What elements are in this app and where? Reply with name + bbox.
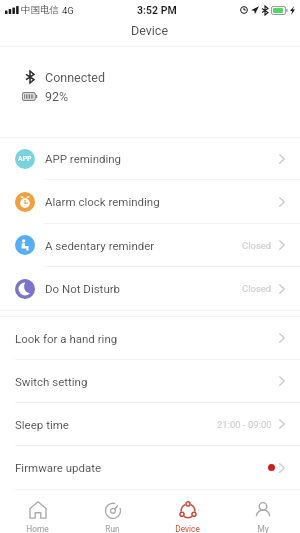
staticText: 4G bbox=[62, 5, 74, 16]
button[interactable]: Device bbox=[150, 490, 225, 533]
staticText: Closed bbox=[242, 240, 272, 251]
staticText: Device bbox=[131, 23, 169, 38]
staticText: Device bbox=[175, 524, 200, 533]
staticText: A sedentary reminder bbox=[45, 239, 155, 252]
staticText: APP bbox=[18, 155, 32, 163]
staticText: Alarm clock reminding bbox=[45, 195, 160, 208]
button[interactable]: A sedentary reminder bbox=[0, 224, 300, 266]
staticText: Run bbox=[105, 524, 120, 533]
staticText: Home bbox=[26, 524, 49, 533]
button[interactable]: Sleep time bbox=[0, 403, 300, 445]
staticText: Switch setting bbox=[15, 375, 88, 388]
staticText: Look for a hand ring bbox=[15, 332, 118, 345]
staticText: 中国电信 bbox=[21, 4, 59, 16]
button[interactable]: Look for a hand ring bbox=[0, 317, 300, 359]
button[interactable]: APP bbox=[0, 138, 300, 179]
staticText: My bbox=[257, 524, 269, 533]
button[interactable]: Do Not Disturb bbox=[0, 267, 300, 310]
staticText: Connected bbox=[45, 70, 106, 84]
button[interactable]: Switch setting bbox=[0, 360, 300, 402]
staticText: Closed bbox=[242, 283, 272, 294]
button[interactable]: My bbox=[225, 490, 300, 533]
staticText: Sleep time bbox=[15, 418, 69, 431]
button[interactable]: Firmware update bbox=[0, 446, 300, 489]
staticText: APP reminding bbox=[45, 152, 122, 165]
staticText: 21:00 - 09:00 bbox=[217, 419, 272, 430]
button[interactable]: Home bbox=[0, 490, 75, 533]
staticText: Do Not Disturb bbox=[45, 282, 121, 295]
staticText: 92% bbox=[45, 89, 69, 103]
staticText: 3:52 PM bbox=[137, 4, 177, 16]
staticText: Firmware update bbox=[15, 461, 102, 474]
button[interactable]: Alarm clock reminding bbox=[0, 180, 300, 223]
button[interactable]: Run bbox=[75, 490, 150, 533]
